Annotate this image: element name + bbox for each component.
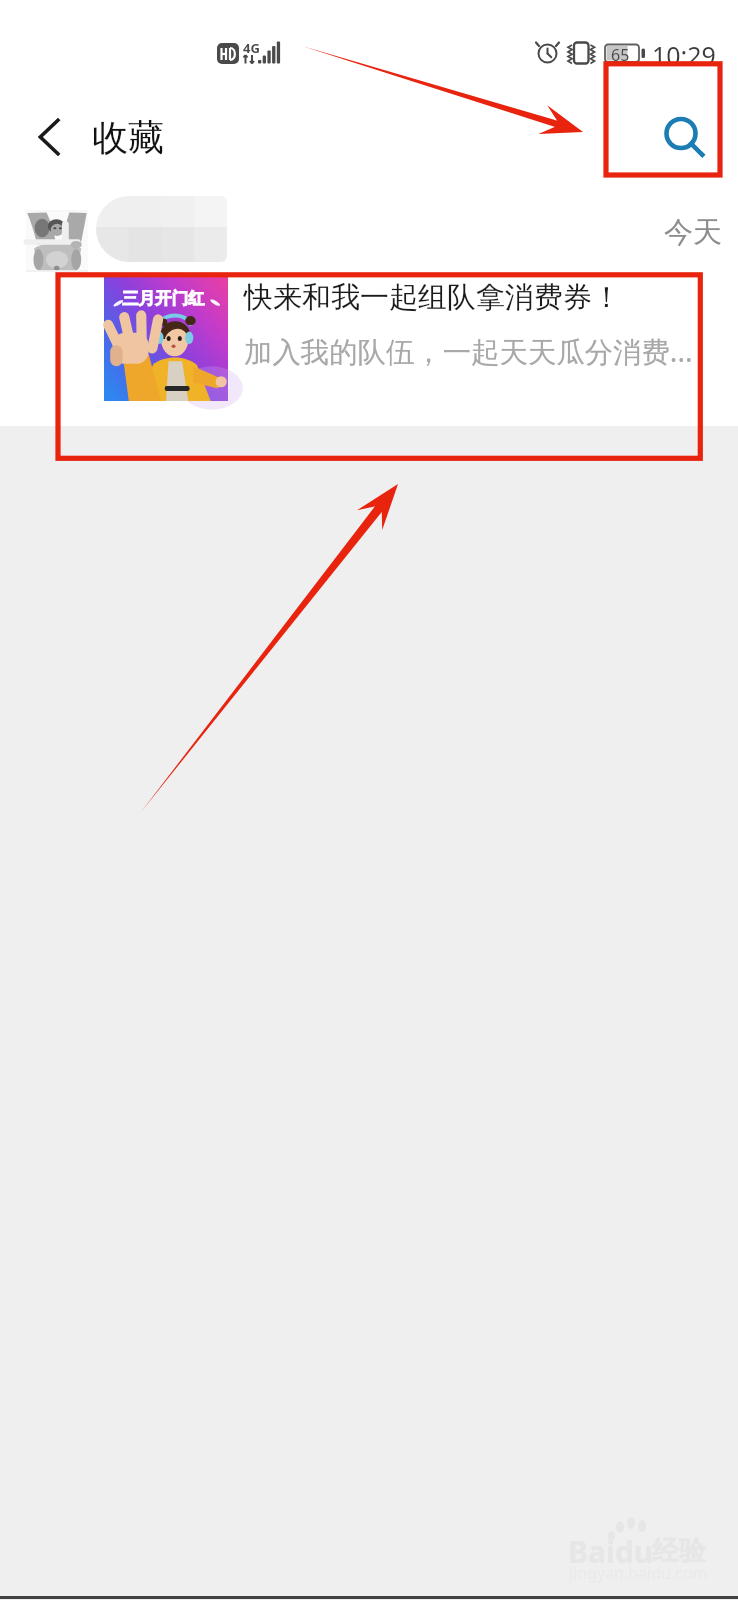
staticText: 收藏 — [92, 115, 164, 160]
staticText: 今天 — [664, 214, 722, 251]
button[interactable]: 三月开门红 — [0, 265, 738, 422]
button[interactable]: Back — [12, 92, 87, 182]
staticText: 10:29 — [652, 38, 716, 72]
staticText: 65 — [611, 44, 630, 66]
staticText: 加入我的队伍，一起天天瓜分消费... — [244, 332, 693, 371]
button[interactable]: Search — [637, 88, 731, 180]
button[interactable] — [0, 190, 738, 426]
staticText: 经验 — [652, 1534, 706, 1568]
staticText: 三月开门红 — [122, 288, 205, 309]
staticText: 4G — [243, 39, 260, 57]
staticText: 快来和我一起组队拿消费券！ — [244, 279, 621, 316]
staticText: Baidu — [568, 1531, 654, 1572]
